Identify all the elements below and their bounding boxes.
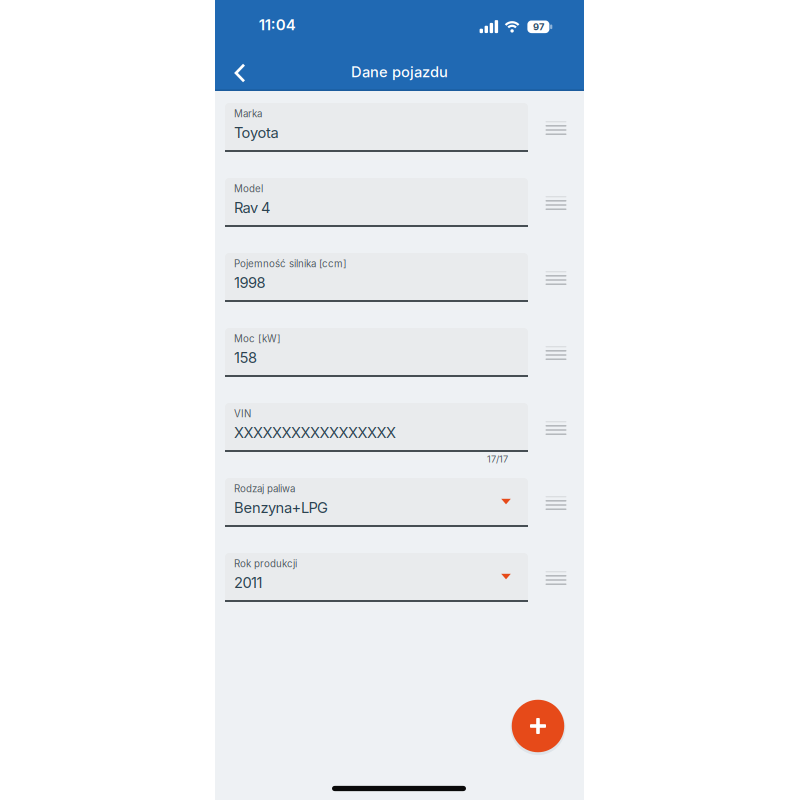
- staticText: Toyota: [234, 124, 278, 141]
- button[interactable]: Rok produkcji: [225, 553, 528, 602]
- staticText: 158: [234, 349, 257, 366]
- staticText: Moc [kW]: [234, 333, 281, 345]
- staticText: Rok produkcji: [234, 558, 297, 570]
- button[interactable]: [232, 62, 248, 83]
- button[interactable]: [545, 195, 566, 210]
- staticText: Model: [234, 183, 263, 195]
- staticText: 97: [533, 21, 544, 33]
- button[interactable]: [545, 270, 566, 285]
- button[interactable]: [545, 570, 566, 585]
- button[interactable]: [511, 699, 565, 753]
- staticText: 11:04: [259, 16, 296, 34]
- staticText: Benzyna+LPG: [234, 499, 328, 516]
- staticText: Dane pojazdu: [351, 63, 448, 81]
- button[interactable]: [545, 495, 566, 510]
- staticText: Marka: [234, 108, 262, 120]
- button[interactable]: Marka: [225, 103, 528, 152]
- button[interactable]: [545, 420, 566, 435]
- staticText: 2011: [234, 574, 262, 591]
- staticText: 17/17: [487, 454, 508, 465]
- button[interactable]: Pojemność silnika [ccm]: [225, 253, 528, 302]
- button[interactable]: Moc [kW]: [225, 328, 528, 377]
- button[interactable]: Rodzaj paliwa: [225, 478, 528, 527]
- staticText: Rav 4: [234, 199, 270, 216]
- staticText: Pojemność silnika [ccm]: [234, 258, 347, 270]
- staticText: 1998: [234, 274, 265, 291]
- button[interactable]: [545, 345, 566, 360]
- staticText: XXXXXXXXXXXXXXXXX: [234, 424, 396, 441]
- button[interactable]: VIN: [225, 403, 528, 452]
- staticText: Rodzaj paliwa: [234, 483, 295, 495]
- button[interactable]: Model: [225, 178, 528, 227]
- button[interactable]: [545, 120, 566, 135]
- staticText: VIN: [234, 408, 251, 420]
